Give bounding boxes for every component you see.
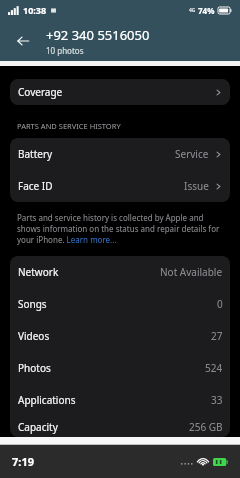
staticText: Face ID xyxy=(18,179,53,193)
staticText: Service xyxy=(175,147,209,161)
staticText: Parts and service history is collected b… xyxy=(17,212,223,245)
staticText: Videos xyxy=(18,329,50,343)
button[interactable]: Capacity xyxy=(10,416,230,437)
staticText: 33 xyxy=(211,393,223,407)
staticText: 10 photos xyxy=(46,45,84,56)
staticText: Photos xyxy=(18,361,51,375)
staticText: 7:19 xyxy=(12,454,34,469)
staticText: Capacity xyxy=(18,420,58,434)
button[interactable]: Network xyxy=(10,256,230,288)
staticText: 256 GB xyxy=(189,420,223,434)
staticText: Songs xyxy=(18,297,47,311)
staticText: Not Available xyxy=(160,265,223,279)
staticText: +92 340 5516050 xyxy=(46,26,150,44)
staticText: 10:38 xyxy=(23,4,47,16)
button[interactable]: Face ID xyxy=(10,170,230,202)
button[interactable]: Coverage xyxy=(10,79,230,105)
button[interactable]: Songs xyxy=(10,288,230,320)
staticText: Issue xyxy=(184,179,209,193)
button[interactable]: Applications xyxy=(10,384,230,416)
staticText: Network xyxy=(18,265,59,279)
button[interactable]: Back xyxy=(8,26,38,56)
staticText: 74% xyxy=(198,5,215,16)
button[interactable]: Battery xyxy=(10,138,230,170)
staticText: 4G xyxy=(189,7,196,14)
staticText: 27 xyxy=(211,329,223,343)
staticText: 524 xyxy=(205,361,223,375)
staticText: PARTS AND SERVICE HISTORY xyxy=(17,121,121,131)
staticText: Coverage xyxy=(18,85,63,99)
button[interactable]: Photos xyxy=(10,352,230,384)
staticText: Applications xyxy=(18,393,76,407)
staticText: Battery xyxy=(18,147,53,161)
button[interactable]: Videos xyxy=(10,320,230,352)
staticText: 0 xyxy=(217,297,223,311)
